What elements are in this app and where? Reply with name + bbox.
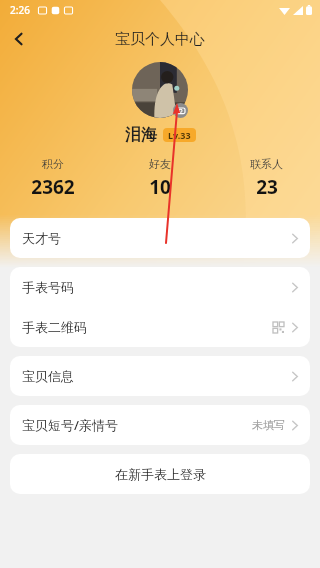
staticText: 积分 (42, 157, 64, 171)
button[interactable]: 宝贝短号/亲情号 (10, 405, 310, 445)
staticText: 天才号 (22, 230, 61, 246)
button[interactable]: 宝贝信息 (10, 356, 310, 396)
button[interactable]: 好友 (106, 157, 213, 200)
staticText: 联系人 (250, 157, 283, 171)
staticText: 未填写 (252, 418, 285, 432)
button[interactable]: Back (0, 20, 38, 58)
button[interactable]: 积分 (0, 157, 106, 200)
staticText: 宝贝信息 (22, 368, 74, 384)
staticText: 23 (256, 174, 278, 200)
button[interactable]: 联系人 (213, 157, 320, 200)
button[interactable]: 手表二维码 (10, 307, 310, 347)
staticText: Lv.33 (168, 129, 191, 141)
button[interactable]: 手表号码 (10, 267, 310, 307)
staticText: 2362 (31, 174, 75, 200)
staticText: 手表二维码 (22, 319, 87, 335)
button[interactable]: 在新手表上登录 (10, 454, 310, 494)
staticText: 10 (149, 174, 171, 200)
staticText: 2:26 (10, 3, 30, 17)
staticText: 宝贝短号/亲情号 (22, 416, 119, 434)
button[interactable]: Change avatar (132, 62, 188, 118)
staticText: 泪海 (125, 125, 157, 145)
staticText: 在新手表上登录 (115, 466, 206, 482)
staticText: 宝贝个人中心 (115, 30, 205, 49)
button[interactable]: 天才号 (10, 218, 310, 258)
staticText: 手表号码 (22, 279, 74, 295)
staticText: 好友 (149, 157, 171, 171)
